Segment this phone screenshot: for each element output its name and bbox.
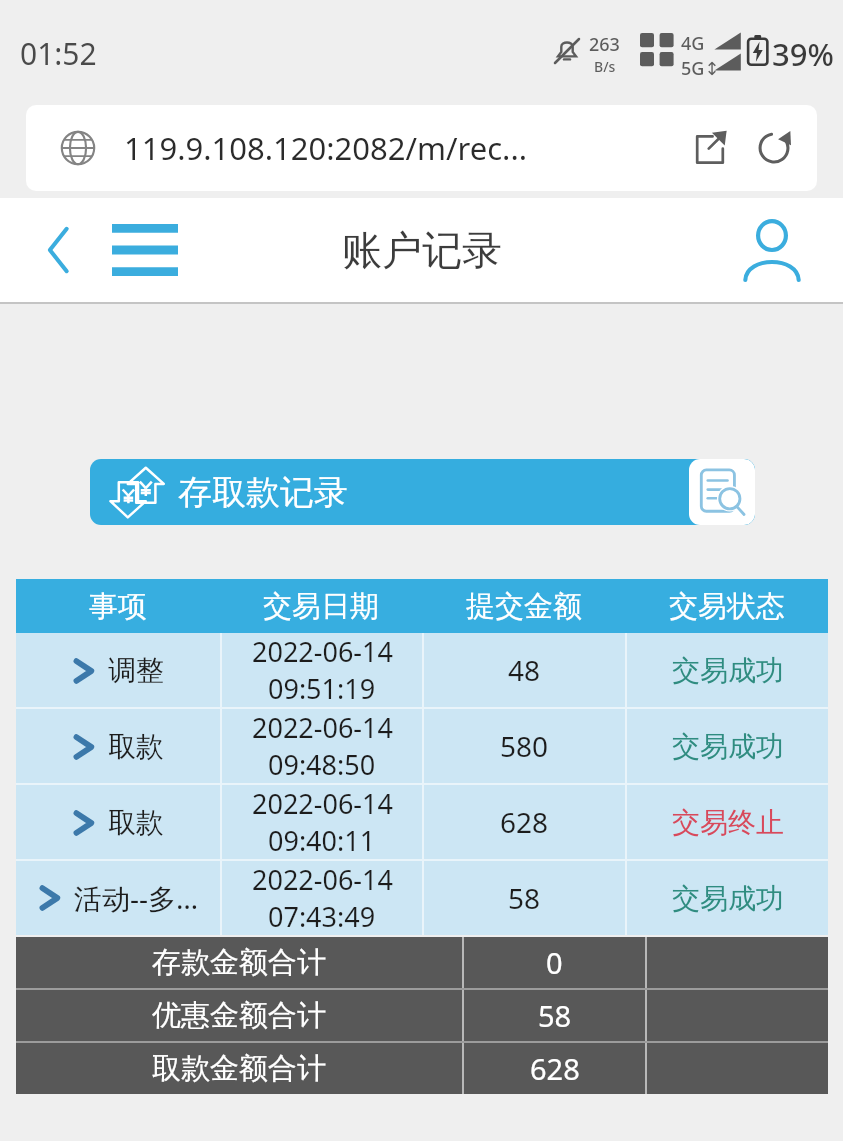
staticText: 调整 [108, 653, 164, 688]
button[interactable]: 活动--多… [16, 861, 828, 935]
staticText: 交易终止 [672, 805, 784, 840]
staticText: 优惠金额合计 [152, 997, 326, 1034]
staticText: 4G [681, 31, 705, 56]
button[interactable]: 优惠金额合计 [16, 990, 828, 1041]
button[interactable]: 调整 [16, 633, 828, 707]
button[interactable]: Back [26, 216, 92, 284]
staticText: 39% [772, 33, 834, 75]
button[interactable]: 取款 [16, 709, 828, 783]
button[interactable]: Share [681, 119, 739, 177]
button[interactable]: Menu [102, 214, 188, 286]
staticText: 交易状态 [669, 588, 785, 625]
staticText: 取款 [108, 729, 164, 764]
staticText: 2022-06-14 [252, 633, 393, 670]
staticText: 263 [589, 32, 620, 57]
button[interactable]: Reload [745, 119, 803, 177]
staticText: 01:52 [20, 33, 97, 74]
staticText: 2022-06-14 [252, 861, 393, 898]
staticText: 119.9.108.120:2082/m/rec... [124, 127, 527, 169]
staticText: 58 [538, 996, 572, 1035]
staticText: 存款金额合计 [152, 944, 326, 981]
staticText: 账户记录 [342, 225, 502, 275]
staticText: 580 [500, 727, 549, 765]
staticText: 交易成功 [672, 881, 784, 916]
staticText: 提交金额 [466, 588, 582, 625]
button[interactable]: 119.9.108.120:2082/m/rec... [26, 105, 817, 191]
button[interactable]: 存款金额合计 [16, 937, 828, 988]
staticText: 活动--多… [74, 879, 199, 917]
staticText: 2022-06-14 [252, 709, 393, 746]
button[interactable]: 取款金额合计 [16, 1043, 828, 1094]
staticText: 2022-06-14 [252, 785, 393, 822]
button[interactable]: 取款 [16, 785, 828, 859]
staticText: 交易成功 [672, 729, 784, 764]
staticText: 07:43:49 [268, 898, 376, 935]
staticText: 09:48:50 [268, 746, 376, 783]
staticText: 5G↕ [681, 56, 720, 81]
staticText: 交易成功 [672, 653, 784, 688]
button[interactable]: Account [730, 214, 814, 286]
staticText: 取款 [108, 805, 164, 840]
button[interactable]: 存取款记录 [90, 459, 755, 525]
staticText: 628 [530, 1049, 580, 1088]
staticText: B/s [594, 57, 616, 76]
staticText: 48 [508, 651, 541, 689]
staticText: 58 [508, 879, 541, 917]
staticText: 628 [500, 803, 549, 841]
staticText: 09:51:19 [268, 670, 376, 707]
staticText: 交易日期 [263, 588, 379, 625]
staticText: 取款金额合计 [152, 1050, 326, 1087]
staticText: 0 [546, 943, 563, 982]
staticText: 存取款记录 [178, 471, 348, 514]
staticText: 事项 [89, 588, 147, 625]
staticText: 09:40:11 [268, 822, 376, 859]
